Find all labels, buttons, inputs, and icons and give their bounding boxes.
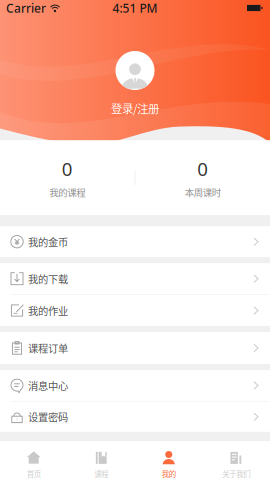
button[interactable]: 我的金币 [0, 226, 270, 257]
staticText: 本周课时 [185, 185, 221, 199]
staticText: 我的课程 [49, 185, 85, 199]
button[interactable]: 设置密码 [0, 402, 270, 432]
button[interactable]: 关于我们 [202, 441, 270, 480]
staticText: 我的作业 [28, 303, 68, 318]
button[interactable]: 我的 [135, 441, 202, 480]
staticText: 消息中心 [28, 378, 68, 393]
staticText: 课程 [94, 468, 108, 479]
staticText: 登录/注册 [111, 100, 159, 117]
button[interactable]: 首页 [0, 441, 67, 480]
staticText: 关于我们 [222, 468, 250, 479]
staticText: 我的下载 [28, 271, 68, 286]
staticText: Carrier [6, 0, 46, 16]
button[interactable]: 课程 [67, 441, 135, 480]
staticText: 我的 [162, 468, 176, 479]
button[interactable]: 课程订单 [0, 332, 270, 364]
button[interactable]: 我的下载 [0, 263, 270, 294]
staticText: 0 [62, 156, 73, 181]
button[interactable]: 消息中心 [0, 370, 270, 401]
staticText: 设置密码 [28, 409, 68, 424]
button[interactable]: 我的作业 [0, 295, 270, 326]
staticText: 我的金币 [28, 234, 68, 249]
staticText: 首页 [27, 468, 41, 479]
staticText: 4:51 PM [112, 0, 157, 16]
staticText: 0 [197, 156, 208, 181]
staticText: 课程订单 [28, 341, 68, 355]
